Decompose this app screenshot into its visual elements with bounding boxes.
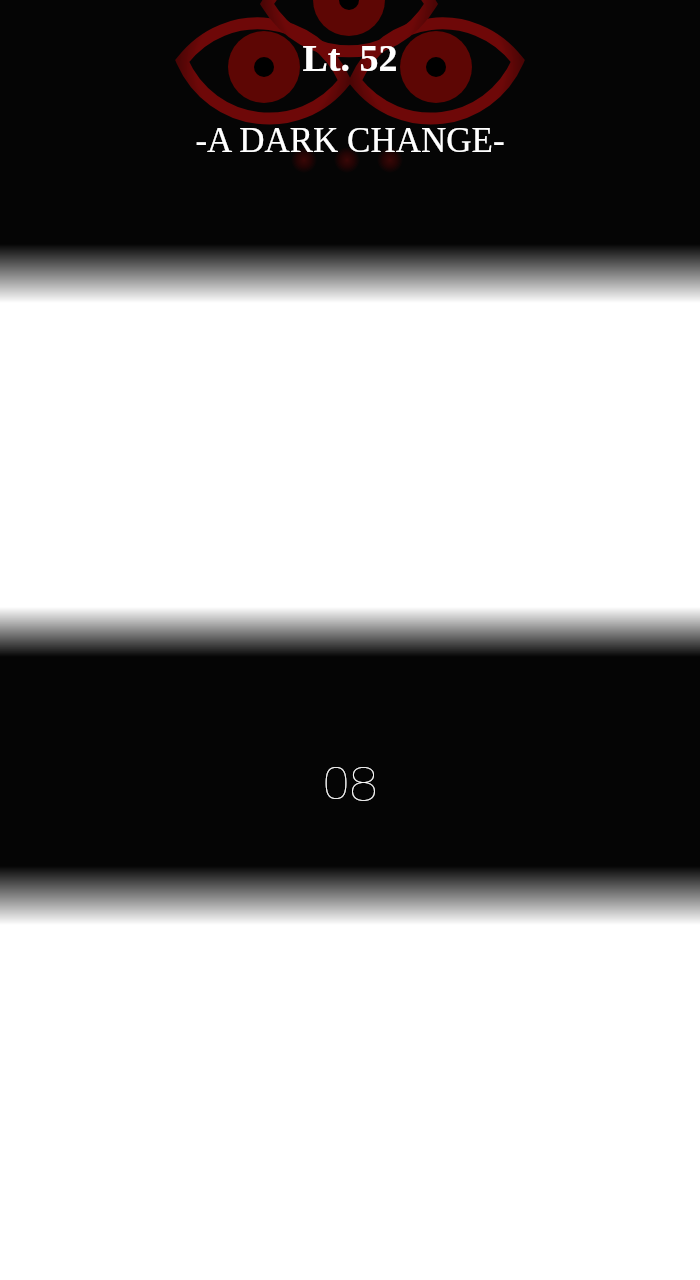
staticText: Lt. 52	[0, 37, 700, 79]
button[interactable]: Lt. 52	[0, 0, 700, 1280]
staticText: -A DARK CHANGE-	[0, 121, 700, 160]
staticText: 08	[0, 751, 700, 815]
